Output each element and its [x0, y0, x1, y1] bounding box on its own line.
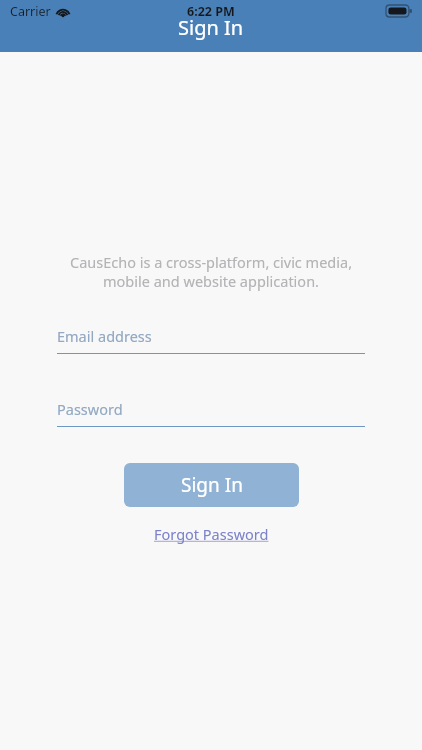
staticText: Carrier	[10, 3, 51, 20]
other: Battery	[386, 5, 412, 17]
other: Wi-Fi	[56, 6, 70, 17]
button[interactable]: Email address	[57, 326, 365, 354]
staticText: Password	[57, 399, 123, 419]
staticText: Sign In	[181, 472, 243, 498]
button[interactable]: Forgot Password	[150, 521, 273, 547]
staticText: 6:22 PM	[187, 3, 235, 20]
button[interactable]: Password	[57, 399, 365, 427]
staticText: CausEcho is a cross-platform, civic medi…	[56, 252, 366, 291]
button[interactable]: Sign In	[124, 463, 299, 507]
staticText: Forgot Password	[154, 524, 269, 544]
staticText: Sign In	[178, 14, 244, 41]
staticText: Email address	[57, 326, 152, 346]
